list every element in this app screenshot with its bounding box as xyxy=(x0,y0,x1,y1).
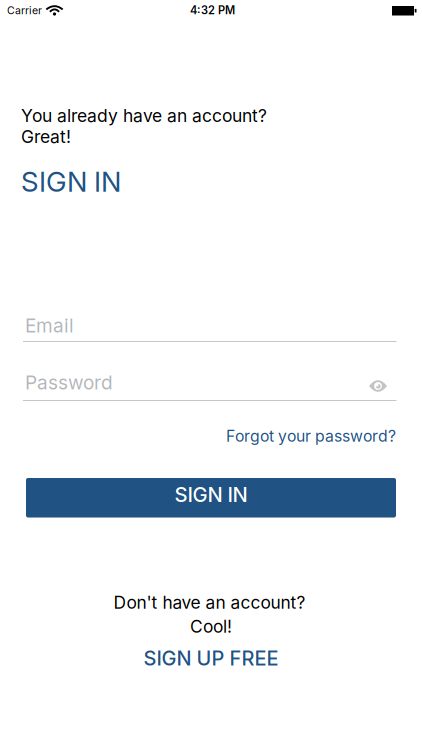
button[interactable]: SIGN UP FREE xyxy=(143,646,278,670)
button[interactable]: SIGN IN xyxy=(26,478,396,517)
staticText: Cool! xyxy=(190,616,232,637)
staticText: You already have an account? xyxy=(21,105,267,126)
staticText: 4:32 PM xyxy=(190,3,235,17)
staticText: Email xyxy=(25,314,74,337)
staticText: SIGN UP FREE xyxy=(143,646,278,670)
staticText: Great! xyxy=(21,126,71,147)
staticText: Don't have an account? xyxy=(113,592,305,613)
button[interactable]: Email xyxy=(23,314,396,342)
button[interactable]: Forgot your password? xyxy=(226,426,396,445)
button[interactable]: Password xyxy=(23,371,396,401)
staticText: SIGN IN xyxy=(174,482,247,507)
staticText: Forgot your password? xyxy=(226,426,396,445)
staticText: SIGN IN xyxy=(21,165,121,199)
staticText: Password xyxy=(25,371,113,394)
staticText: Carrier xyxy=(7,4,42,17)
